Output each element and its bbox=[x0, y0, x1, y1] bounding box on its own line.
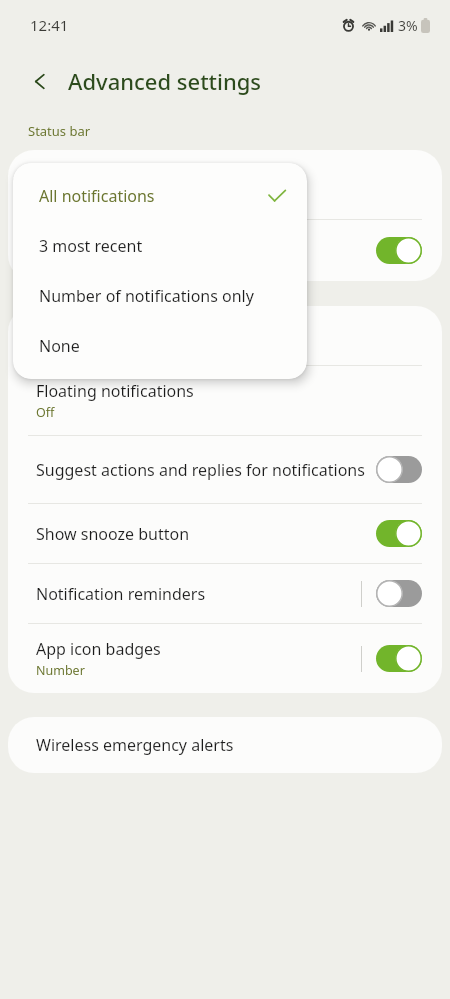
button[interactable]: On bbox=[376, 645, 422, 672]
staticText: None bbox=[39, 335, 287, 357]
button[interactable]: Off bbox=[376, 580, 422, 607]
staticText: 3% bbox=[398, 16, 418, 35]
staticText: Notification reminders bbox=[36, 583, 206, 605]
button[interactable]: Wireless emergency alerts bbox=[8, 717, 442, 773]
button[interactable]: Back bbox=[20, 61, 60, 101]
button[interactable]: App icon badges bbox=[8, 624, 442, 693]
staticText: Status bar bbox=[28, 122, 91, 140]
staticText: All notifications bbox=[39, 185, 267, 207]
button[interactable]: All notifications bbox=[13, 171, 307, 221]
button[interactable]: Notification reminders bbox=[8, 564, 442, 623]
button[interactable]: Show snooze button bbox=[8, 504, 442, 563]
staticText: 12:41 bbox=[30, 15, 69, 35]
staticText: Conversations bbox=[36, 325, 144, 347]
button[interactable]: Suggest actions and replies for notifica… bbox=[8, 436, 442, 503]
staticText: Suggest actions and replies for notifica… bbox=[36, 459, 365, 481]
staticText: Number of notifications only bbox=[39, 285, 287, 307]
button[interactable]: On bbox=[376, 237, 422, 264]
button[interactable]: Off bbox=[376, 456, 422, 483]
button[interactable]: 3 most recent bbox=[13, 221, 307, 271]
button[interactable]: On bbox=[8, 220, 442, 281]
button[interactable]: Conversations bbox=[8, 306, 442, 365]
staticText: Wireless emergency alerts bbox=[36, 734, 234, 756]
staticText: Number bbox=[36, 662, 85, 679]
button[interactable] bbox=[8, 150, 442, 219]
button[interactable]: Number of notifications only bbox=[13, 271, 307, 321]
staticText: Advanced settings bbox=[68, 66, 262, 96]
staticText: 3 most recent bbox=[39, 235, 287, 257]
staticText: App icon badges bbox=[36, 638, 161, 660]
button[interactable]: On bbox=[376, 520, 422, 547]
staticText: Floating notifications bbox=[36, 380, 194, 402]
button[interactable]: Floating notifications bbox=[8, 366, 442, 435]
button[interactable]: None bbox=[13, 321, 307, 371]
staticText: Show snooze button bbox=[36, 523, 190, 545]
staticText: Off bbox=[36, 404, 55, 421]
